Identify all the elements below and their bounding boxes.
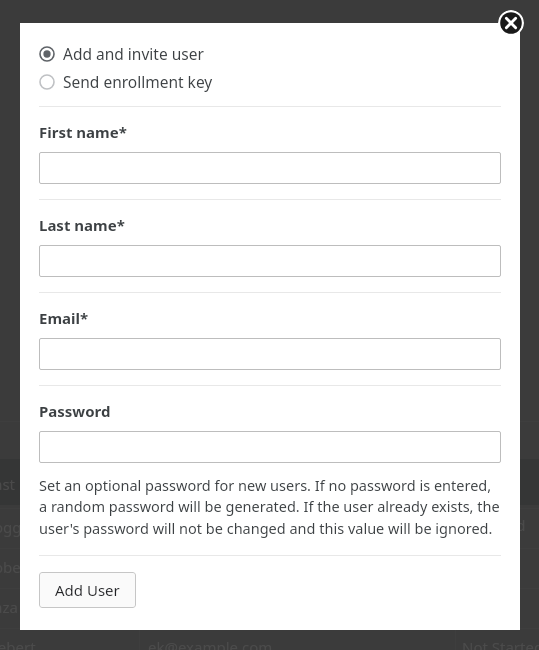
staticText: ast [0,474,16,494]
staticText: Not Started [462,637,539,650]
button[interactable] [39,431,501,463]
staticText: lled [500,515,526,535]
button[interactable] [39,152,501,184]
staticText: Set an optional password for new users. … [39,475,501,539]
staticText: Last name* [39,215,125,235]
staticText: obe [0,557,21,577]
staticText: ogg [0,517,22,537]
staticText: Password [39,401,111,421]
staticText: ek@example.com [148,637,273,650]
button[interactable]: Add User [39,572,136,608]
staticText: Send enrollment key [63,71,213,92]
staticText: First name* [39,122,127,142]
staticText: aza [0,597,18,617]
staticText: Add User [55,580,120,600]
button[interactable]: Close [498,10,524,36]
button[interactable] [39,338,501,370]
staticText: Add and invite user [63,43,204,64]
staticText: ss [462,517,477,537]
button[interactable] [39,245,501,277]
button[interactable]: Send enrollment key [39,71,213,92]
staticText: iebert [0,637,36,650]
staticText: Email* [39,308,89,328]
button[interactable]: Add and invite user [39,43,204,64]
